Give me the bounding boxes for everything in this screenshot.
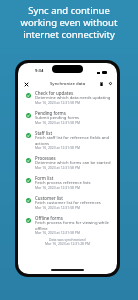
staticText: Fetch process reference lists <box>35 180 91 186</box>
button[interactable]: Check for updates <box>18 91 117 111</box>
button[interactable]: Processes <box>18 156 117 176</box>
button[interactable]: Pending forms <box>18 111 117 131</box>
staticText: Synchronize data <box>50 80 86 86</box>
staticText: Mar 16, 2023 at 12:31:58 PM <box>35 230 81 235</box>
staticText: Mar 16, 2023 at 12:31:28 PM <box>45 241 91 246</box>
staticText: Mar 16, 2023 at 12:31:58 PM <box>35 165 81 170</box>
staticText: Customer list <box>35 195 63 201</box>
staticText: Mar 16, 2023 at 12:31:58 PM <box>35 185 81 190</box>
staticText: Submit pending forms <box>35 115 80 121</box>
button[interactable]: Staff list <box>18 131 117 156</box>
button[interactable]: Delete <box>97 79 106 88</box>
staticText: Staff list <box>35 130 53 136</box>
staticText: Fetch customer list for references <box>35 200 101 206</box>
staticText: Check for updates <box>35 90 74 96</box>
staticText: Form list <box>35 175 54 181</box>
staticText: 9:34 <box>35 68 44 74</box>
button[interactable]: Customer list <box>18 196 117 216</box>
staticText: Determine which forms can be started <box>35 160 111 166</box>
staticText: Mar 16, 2023 at 12:31:58 PM <box>35 205 81 210</box>
button[interactable]: Refresh <box>106 79 115 88</box>
button[interactable]: Close <box>22 80 30 88</box>
staticText: Mar 16, 2023 at 12:31:58 PM <box>35 100 81 105</box>
staticText: Fetch process forms for viewing while of… <box>35 220 113 231</box>
staticText: Pending forms <box>35 110 66 116</box>
staticText: Offline forms <box>35 215 63 221</box>
staticText: Processes <box>35 155 56 161</box>
staticText: Mar 16, 2023 at 12:31:58 PM <box>35 145 81 150</box>
staticText: Data was synchronized <box>49 237 86 242</box>
staticText: Sync and continue working even without i… <box>17 4 121 41</box>
button[interactable]: Offline forms <box>18 216 117 241</box>
staticText: Mar 16, 2023 at 12:31:58 PM <box>35 120 81 125</box>
button[interactable]: Form list <box>18 176 117 196</box>
staticText: Determine which data needs updating <box>35 95 111 101</box>
staticText: Fetch staff list for reference fields an… <box>35 135 113 146</box>
